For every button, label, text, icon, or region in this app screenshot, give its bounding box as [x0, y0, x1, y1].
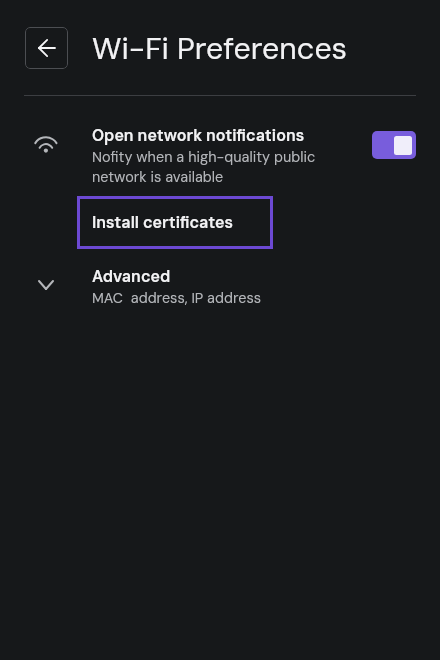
button[interactable]: Back	[25, 27, 68, 69]
staticText: Install certificates	[92, 212, 234, 233]
button[interactable]: Install certificates	[77, 196, 273, 249]
staticText: Advanced	[92, 266, 171, 287]
staticText: Open network notifications	[92, 125, 305, 146]
staticText: Nofity when a high-quality public networ…	[92, 148, 316, 187]
staticText: Wi-Fi Preferences	[92, 29, 348, 69]
button[interactable]: Open network notifications toggle	[372, 131, 416, 159]
staticText: MAC address, IP address	[92, 289, 262, 308]
